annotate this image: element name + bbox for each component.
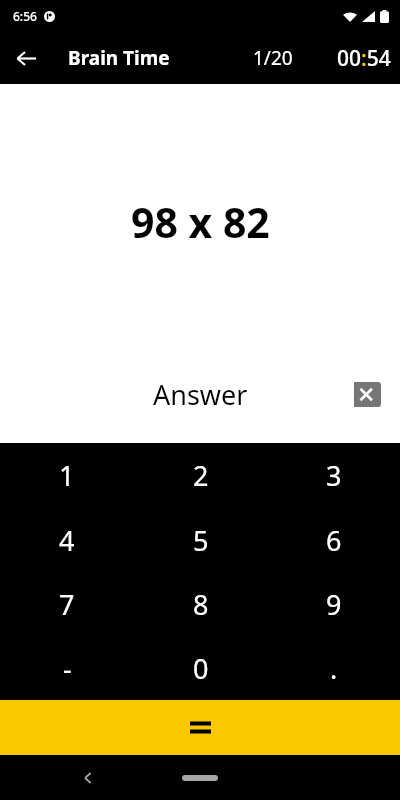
- button[interactable]: Back: [0, 32, 52, 84]
- button[interactable]: 3: [267, 443, 400, 508]
- button[interactable]: 9: [267, 572, 400, 636]
- button[interactable]: Back: [68, 758, 108, 798]
- button[interactable]: .: [267, 636, 400, 700]
- staticText: 8: [193, 586, 209, 623]
- button[interactable]: 1: [0, 443, 134, 508]
- staticText: Brain Time: [68, 45, 170, 71]
- staticText: 6: [326, 522, 342, 559]
- staticText: 1: [59, 457, 75, 494]
- button[interactable]: -: [0, 636, 134, 700]
- staticText: 0: [193, 650, 209, 687]
- button[interactable]: 7: [0, 572, 134, 636]
- button[interactable]: Backspace: [340, 377, 384, 411]
- staticText: -: [63, 650, 72, 687]
- button[interactable]: Equals: [0, 700, 400, 755]
- button[interactable]: 5: [134, 508, 267, 572]
- staticText: 4: [59, 522, 75, 559]
- button[interactable]: Home: [182, 775, 218, 781]
- staticText: 5: [193, 522, 209, 559]
- staticText: 7: [59, 586, 75, 623]
- staticText: 00:54: [337, 44, 391, 73]
- staticText: 9: [326, 586, 342, 623]
- button[interactable]: 2: [134, 443, 267, 508]
- button[interactable]: 0: [134, 636, 267, 700]
- staticText: 3: [326, 457, 342, 494]
- staticText: 1/20: [253, 45, 293, 71]
- button[interactable]: Answer: [0, 371, 400, 417]
- staticText: 2: [193, 457, 209, 494]
- button[interactable]: 6: [267, 508, 400, 572]
- button[interactable]: 4: [0, 508, 134, 572]
- staticText: Answer: [153, 376, 248, 413]
- staticText: 98 x 82: [131, 194, 270, 250]
- staticText: 6:56: [13, 8, 37, 24]
- button[interactable]: 8: [134, 572, 267, 636]
- staticText: .: [330, 650, 338, 687]
